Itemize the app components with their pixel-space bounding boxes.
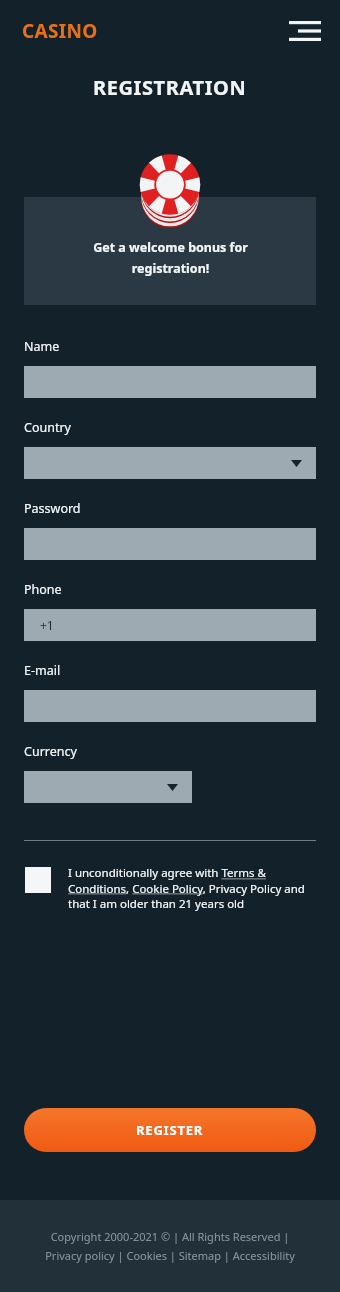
staticText: I unconditionally agree with Terms & Con…: [68, 865, 316, 911]
staticText: Copyright 2000-2021 © | All Rights Reser…: [45, 1229, 295, 1263]
button[interactable]: [24, 771, 192, 803]
button[interactable]: REGISTER: [24, 1108, 316, 1152]
staticText: REGISTER: [136, 1121, 204, 1139]
staticText: Password: [24, 500, 81, 517]
staticText: E-mail: [24, 662, 61, 679]
staticText: Phone: [24, 581, 62, 598]
button[interactable]: I unconditionally agree with Terms & Con…: [25, 865, 316, 911]
staticText: Get a welcome bonus for registration!: [93, 239, 248, 276]
button[interactable]: Menu: [288, 14, 322, 48]
staticText: Country: [24, 419, 71, 436]
button[interactable]: CASINO: [22, 18, 98, 44]
staticText: REGISTRATION: [93, 74, 247, 101]
button[interactable]: [24, 447, 316, 479]
staticText: Name: [24, 338, 60, 355]
button[interactable]: +1: [24, 609, 316, 641]
staticText: Currency: [24, 743, 77, 760]
staticText: +1: [40, 617, 54, 633]
